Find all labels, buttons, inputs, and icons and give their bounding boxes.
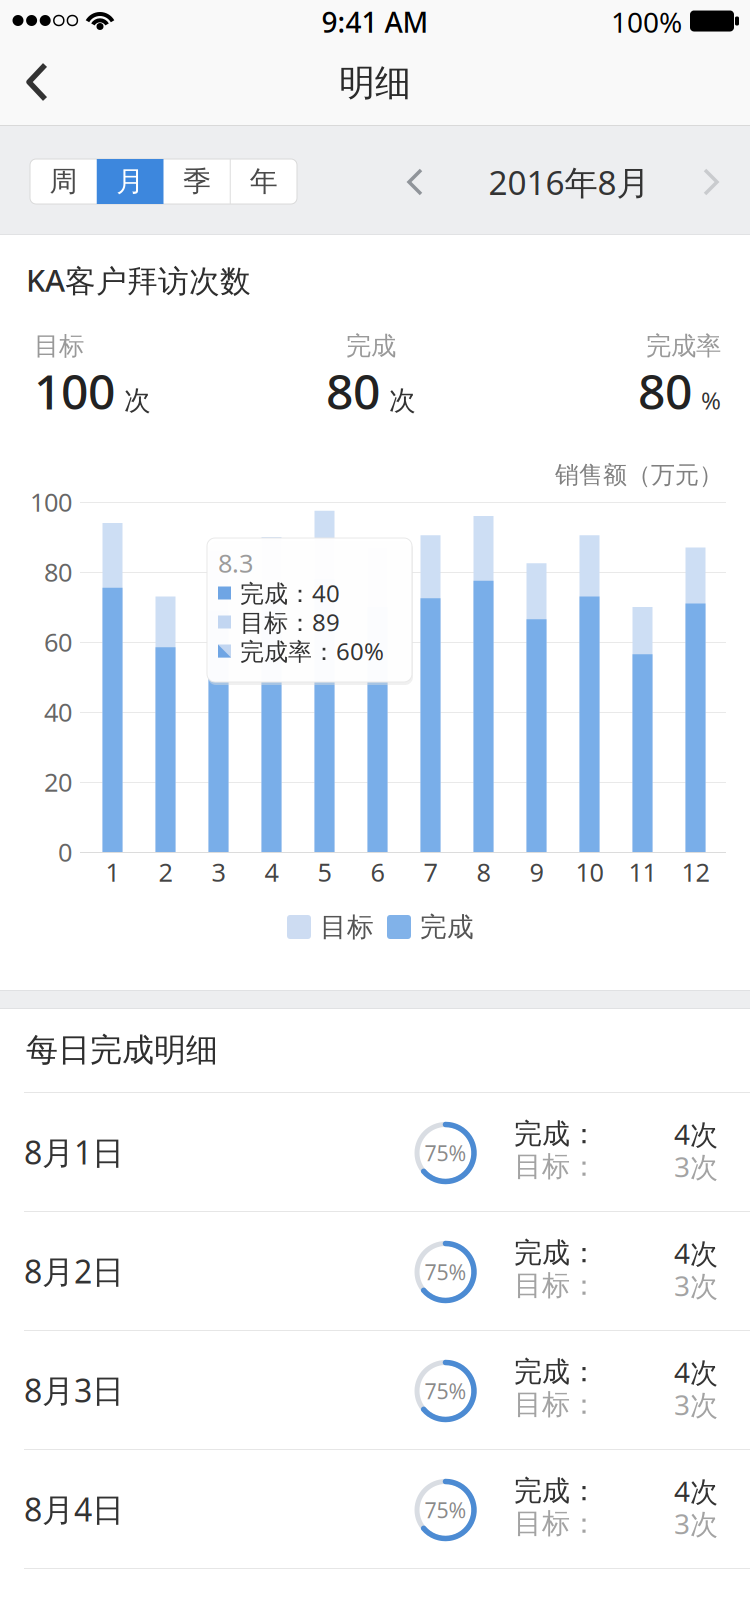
staticText: 2016年8月 (488, 160, 649, 204)
staticText: 20 (44, 765, 72, 799)
staticText: 4次 (674, 1472, 718, 1510)
staticText: 4 (264, 855, 278, 889)
button[interactable]: 8月3日 (0, 1331, 750, 1450)
staticText: 目标 (34, 330, 84, 361)
staticText: KA客户拜访次数 (26, 260, 251, 300)
staticText: 80 (44, 555, 72, 589)
staticText: 4次 (674, 1234, 718, 1272)
staticText: 每日完成明细 (26, 1030, 218, 1070)
staticText: 目标： (514, 1268, 598, 1303)
staticText: 目标： (514, 1387, 598, 1422)
staticText: 80 (638, 359, 692, 423)
staticText: 100 (30, 485, 72, 519)
button[interactable]: 月 (97, 159, 164, 204)
staticText: 2 (158, 855, 172, 889)
staticText: 4次 (674, 1115, 718, 1153)
staticText: 完成 (420, 911, 474, 943)
staticText: 3次 (674, 1505, 718, 1542)
staticText: 完成： (514, 1236, 598, 1270)
staticText: 9 (529, 855, 543, 889)
staticText: 8月2日 (24, 1250, 124, 1292)
staticText: 8.3 (218, 546, 253, 580)
button[interactable]: 8月2日 (0, 1212, 750, 1331)
button[interactable]: 年 (230, 159, 297, 204)
staticText: 0 (58, 835, 72, 869)
staticText: 周 (49, 164, 77, 199)
staticText: 目标： (514, 1149, 598, 1184)
staticText: 完成率：60% (240, 635, 384, 667)
staticText: 3次 (674, 1267, 718, 1304)
staticText: 4次 (674, 1353, 718, 1391)
staticText: 月 (116, 164, 144, 199)
staticText: 75% (424, 1377, 466, 1405)
staticText: 75% (424, 1139, 466, 1167)
staticText: 完成： (514, 1117, 598, 1151)
staticText: 季 (183, 164, 211, 199)
staticText: 完成： (514, 1474, 598, 1508)
button[interactable]: Next month (689, 160, 733, 204)
staticText: 8月1日 (24, 1131, 124, 1173)
staticText: 1 (105, 855, 119, 889)
staticText: 12 (681, 855, 709, 889)
staticText: 完成率 (646, 330, 721, 361)
staticText: 75% (424, 1496, 466, 1524)
staticText: 100% (611, 3, 682, 41)
staticText: 年 (250, 164, 278, 199)
staticText: 完成： (514, 1355, 598, 1389)
staticText: 75% (424, 1258, 466, 1286)
staticText: 11 (628, 855, 656, 889)
staticText: 8月3日 (24, 1369, 124, 1411)
staticText: 40 (44, 695, 72, 729)
staticText: 100 (34, 359, 115, 423)
staticText: 销售额（万元） (555, 460, 723, 490)
button[interactable]: 8月4日 (0, 1450, 750, 1569)
staticText: 6 (370, 855, 384, 889)
staticText: 完成 (346, 330, 396, 361)
staticText: 次 (124, 384, 151, 417)
button[interactable]: 8月1日 (0, 1093, 750, 1212)
staticText: 80 (326, 359, 380, 423)
staticText: % (701, 384, 721, 416)
staticText: 完成：40 (240, 577, 340, 609)
staticText: 8月4日 (24, 1488, 124, 1530)
staticText: 次 (389, 384, 416, 417)
staticText: 3次 (674, 1148, 718, 1185)
staticText: 9:41 AM (321, 3, 428, 41)
staticText: 目标 (320, 911, 374, 943)
staticText: 60 (44, 625, 72, 659)
staticText: 7 (423, 855, 437, 889)
staticText: 目标： (514, 1506, 598, 1541)
staticText: 8 (476, 855, 490, 889)
staticText: 5 (317, 855, 331, 889)
button[interactable]: 周 (30, 159, 97, 204)
button[interactable]: Back (8, 52, 68, 112)
staticText: 3次 (674, 1386, 718, 1423)
button[interactable]: Previous month (393, 160, 437, 204)
staticText: 明细 (339, 61, 411, 105)
staticText: 10 (575, 855, 603, 889)
staticText: 目标：89 (240, 606, 340, 638)
staticText: 3 (211, 855, 225, 889)
button[interactable]: 季 (163, 159, 230, 204)
